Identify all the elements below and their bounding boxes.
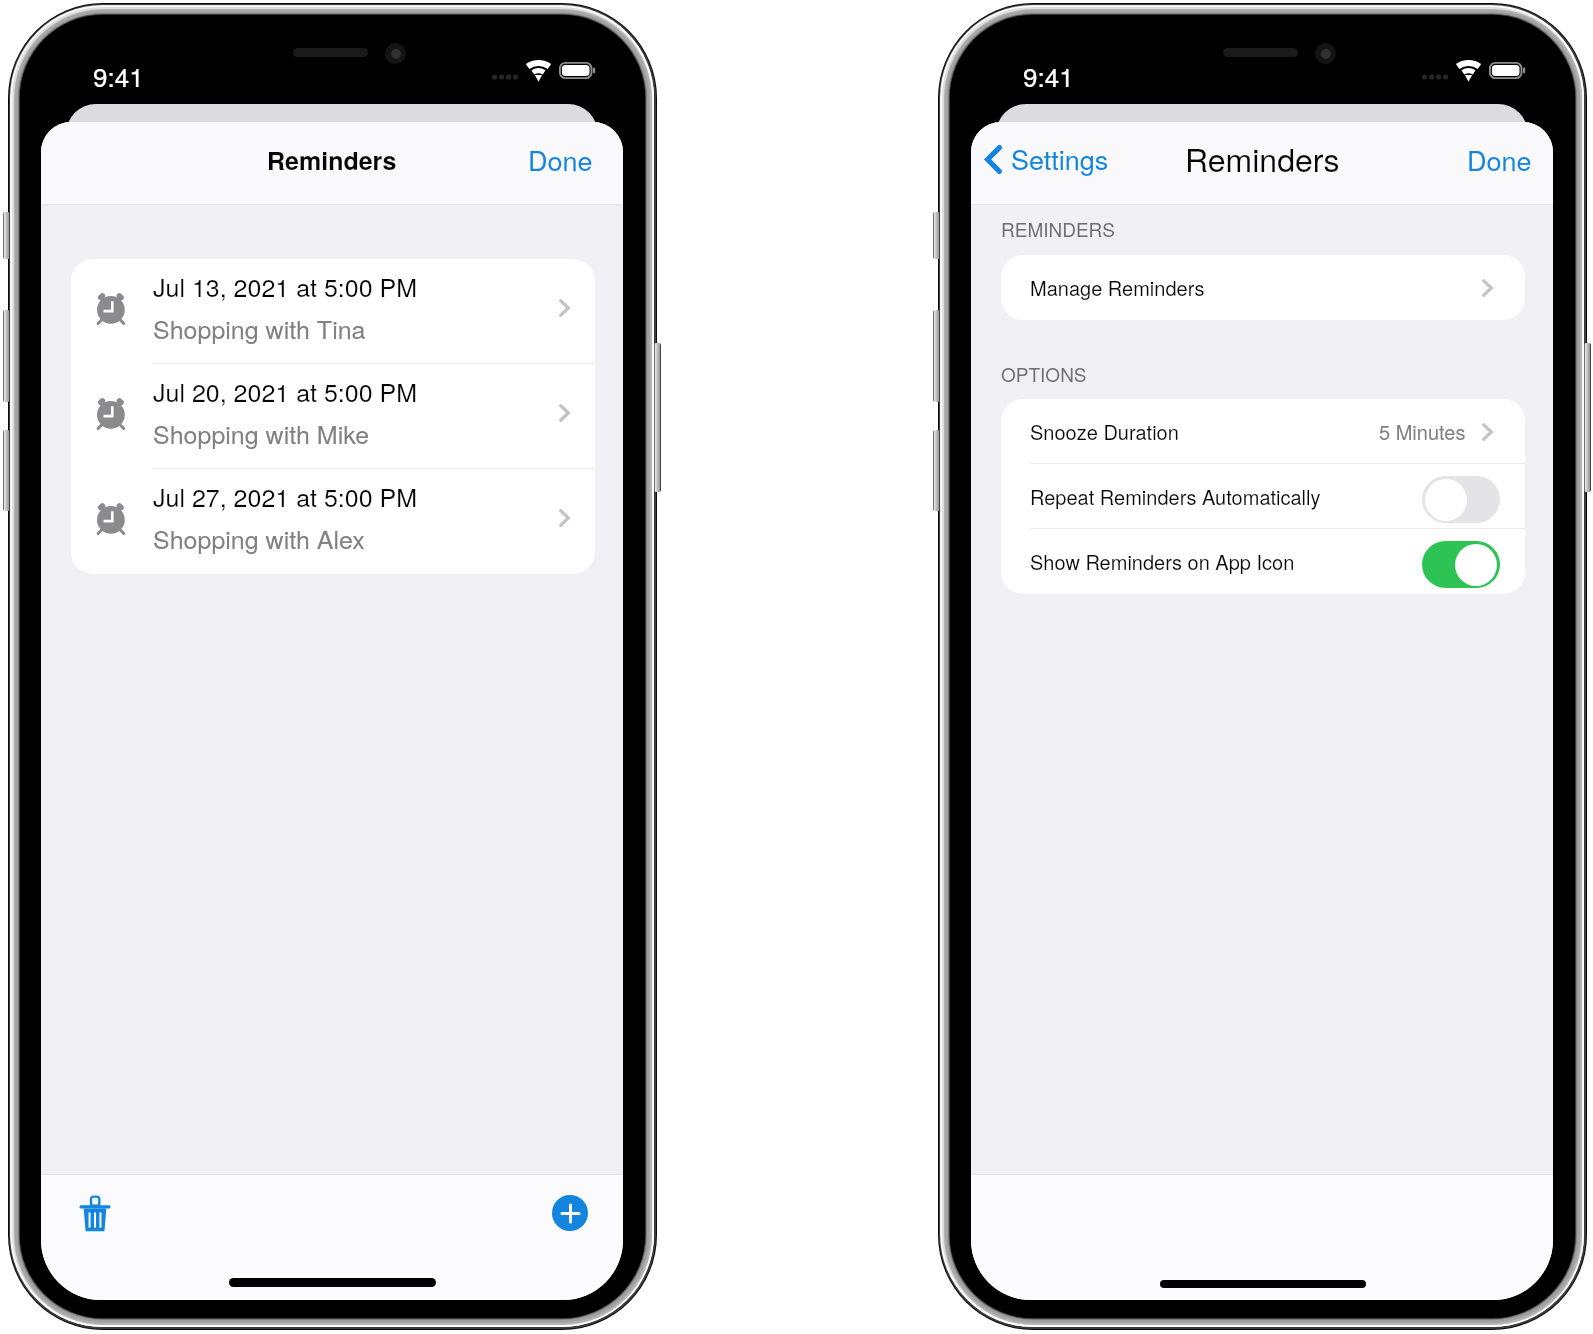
staticText: Done	[1467, 140, 1532, 179]
button[interactable]: Delete	[65, 1181, 125, 1246]
staticText: Reminders	[1185, 135, 1340, 181]
staticText: 5 Minutes	[1379, 417, 1466, 446]
button[interactable]: Done	[498, 122, 623, 201]
staticText: OPTIONS	[1001, 360, 1087, 387]
staticText: Shopping with Mike	[153, 415, 370, 451]
button[interactable]: Add reminder	[541, 1184, 599, 1242]
button[interactable]: Done	[1439, 122, 1553, 199]
staticText: Jul 13, 2021 at 5:00 PM	[153, 268, 418, 304]
staticText: Shopping with Tina	[153, 310, 366, 346]
staticText: Done	[528, 140, 593, 179]
button[interactable]: Snooze Duration	[1001, 399, 1525, 464]
staticText: Snooze Duration	[1030, 417, 1179, 446]
staticText: Manage Reminders	[1030, 273, 1205, 302]
button[interactable]: Toggle on	[1422, 541, 1500, 588]
button[interactable]: Show Reminders on App Icon	[1001, 529, 1525, 594]
staticText: REMINDERS	[1001, 215, 1116, 242]
button[interactable]: Toggle off	[1422, 476, 1500, 523]
button[interactable]: Jul 20, 2021 at 5:00 PM	[71, 364, 595, 469]
staticText: Settings	[1011, 139, 1109, 178]
staticText: Jul 20, 2021 at 5:00 PM	[153, 373, 418, 409]
staticText: Shopping with Alex	[153, 520, 365, 556]
button[interactable]: Settings	[971, 122, 1127, 199]
staticText: Repeat Reminders Automatically	[1030, 482, 1321, 511]
button[interactable]: Repeat Reminders Automatically	[1001, 464, 1525, 529]
staticText: 9:41	[93, 57, 144, 94]
button[interactable]: Jul 13, 2021 at 5:00 PM	[71, 259, 595, 364]
staticText: 9:41	[1023, 57, 1074, 94]
staticText: Show Reminders on App Icon	[1030, 547, 1295, 576]
button[interactable]: Jul 27, 2021 at 5:00 PM	[71, 469, 595, 574]
staticText: Reminders	[267, 142, 397, 178]
staticText: Jul 27, 2021 at 5:00 PM	[153, 478, 418, 514]
button[interactable]: Manage Reminders	[1001, 255, 1525, 320]
